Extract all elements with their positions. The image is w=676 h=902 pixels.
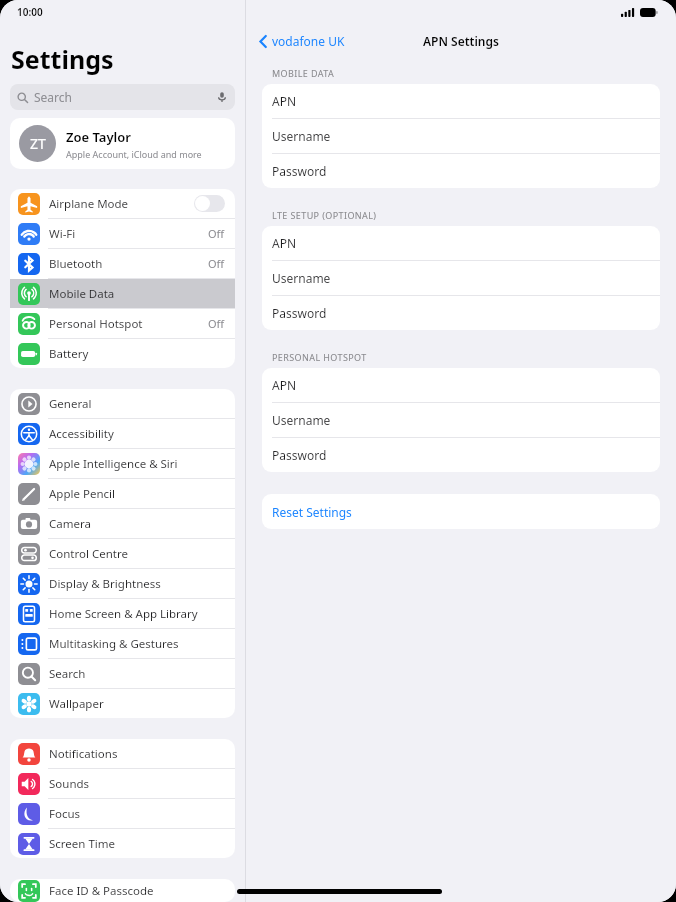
staticText: Search (34, 89, 72, 105)
staticText: Mobile Data (49, 286, 115, 302)
button[interactable]: Username (262, 119, 660, 153)
button[interactable]: Password (262, 154, 660, 188)
staticText: APN (272, 93, 297, 109)
button[interactable]: Screen Time (10, 829, 235, 858)
staticText: Username (272, 270, 331, 286)
staticText: Search (49, 666, 86, 682)
staticText: Off (208, 256, 225, 271)
button[interactable]: Camera (10, 509, 235, 538)
staticText: Apple Pencil (49, 486, 115, 502)
staticText: Username (272, 412, 331, 428)
staticText: APN Settings (423, 33, 499, 49)
button[interactable]: Focus (10, 799, 235, 828)
staticText: Camera (49, 516, 91, 532)
staticText: Password (272, 305, 327, 321)
staticText: Sounds (49, 776, 90, 792)
staticText: APN (272, 235, 297, 251)
staticText: Password (272, 447, 327, 463)
staticText: Off (208, 316, 225, 331)
staticText: Display & Brightness (49, 576, 161, 592)
button[interactable]: Sounds (10, 769, 235, 798)
staticText: Username (272, 128, 331, 144)
staticText: LTE SETUP (OPTIONAL) (272, 209, 377, 221)
button[interactable]: Battery (10, 339, 235, 368)
staticText: Control Centre (49, 546, 128, 562)
button[interactable]: Accessibility (10, 419, 235, 448)
button[interactable]: Display & Brightness (10, 569, 235, 598)
staticText: Notifications (49, 746, 118, 762)
button[interactable]: Multitasking & Gestures (10, 629, 235, 658)
button[interactable]: Face ID & Passcode (10, 879, 235, 902)
staticText: Password (272, 163, 327, 179)
staticText: Battery (49, 346, 89, 362)
button[interactable]: APN (262, 368, 660, 402)
button[interactable]: Airplane Mode off (194, 195, 225, 212)
staticText: Settings (11, 42, 114, 76)
button[interactable]: Search (10, 659, 235, 688)
button[interactable]: Apple Intelligence & Siri (10, 449, 235, 478)
button[interactable]: Mobile Data (10, 279, 235, 308)
staticText: APN (272, 377, 297, 393)
staticText: PERSONAL HOTSPOT (272, 351, 367, 363)
staticText: Multitasking & Gestures (49, 636, 179, 652)
staticText: Home Screen & App Library (49, 606, 198, 622)
button[interactable]: Apple Pencil (10, 479, 235, 508)
staticText: Off (208, 226, 225, 241)
button[interactable]: Wallpaper (10, 689, 235, 718)
staticText: Bluetooth (49, 256, 103, 272)
button[interactable]: APN (262, 84, 660, 118)
button[interactable]: ZT (10, 118, 235, 169)
button[interactable]: Notifications (10, 739, 235, 768)
staticText: Apple Account, iCloud and more (66, 148, 202, 160)
button[interactable]: Username (262, 261, 660, 295)
staticText: Accessibility (49, 426, 114, 442)
staticText: Reset Settings (272, 504, 352, 520)
staticText: Focus (49, 806, 81, 822)
button[interactable]: Username (262, 403, 660, 437)
staticText: vodafone UK (272, 33, 345, 49)
staticText: Wallpaper (49, 696, 104, 712)
staticText: Apple Intelligence & Siri (49, 456, 178, 472)
staticText: Personal Hotspot (49, 316, 143, 332)
staticText: MOBILE DATA (272, 67, 335, 79)
staticText: Face ID & Passcode (49, 883, 154, 899)
button[interactable]: vodafone UK (254, 30, 350, 52)
staticText: Zoe Taylor (66, 128, 131, 146)
staticText: 10:00 (17, 5, 43, 19)
button[interactable]: Password (262, 296, 660, 330)
button[interactable]: Search (10, 84, 235, 110)
button[interactable]: Password (262, 438, 660, 472)
staticText: Wi-Fi (49, 226, 76, 242)
button[interactable]: APN (262, 226, 660, 260)
staticText: Airplane Mode (49, 196, 129, 212)
staticText: General (49, 396, 92, 412)
button[interactable]: Airplane Mode (10, 189, 235, 218)
button[interactable]: Home Screen & App Library (10, 599, 235, 628)
staticText: Screen Time (49, 836, 116, 852)
button[interactable]: Bluetooth (10, 249, 235, 278)
button[interactable]: General (10, 389, 235, 418)
button[interactable]: Personal Hotspot (10, 309, 235, 338)
button[interactable]: Wi-Fi (10, 219, 235, 248)
staticText: ZT (30, 134, 46, 153)
button[interactable]: Reset Settings (262, 494, 660, 529)
button[interactable]: Control Centre (10, 539, 235, 568)
